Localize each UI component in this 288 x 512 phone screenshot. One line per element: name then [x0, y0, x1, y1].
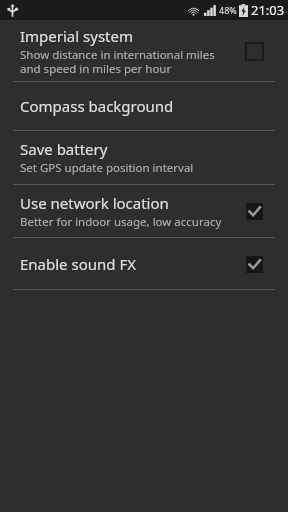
staticText: Enable sound FX	[20, 254, 136, 274]
button[interactable]: Enable sound FX	[0, 238, 288, 289]
staticText: Compass background	[20, 96, 174, 116]
button[interactable]: Imperial system, unchecked	[240, 37, 268, 65]
staticText: 48%	[219, 4, 237, 16]
button[interactable]: Use network location, checked	[240, 197, 268, 225]
button[interactable]: Compass background	[0, 82, 288, 130]
button[interactable]: Use network location	[0, 185, 288, 237]
staticText: Save battery	[20, 139, 108, 159]
staticText: Better for indoor usage, low accuracy	[20, 214, 222, 230]
staticText: Set GPS update position interval	[20, 160, 194, 176]
staticText: Use network location	[20, 193, 169, 213]
staticText: 21:03	[251, 1, 285, 19]
staticText: Imperial system	[20, 26, 133, 46]
button[interactable]: Save battery	[0, 131, 288, 184]
staticText: Show distance in international miles and…	[20, 47, 215, 76]
button[interactable]: Enable sound FX, checked	[240, 250, 268, 278]
button[interactable]: Imperial system	[0, 20, 288, 81]
